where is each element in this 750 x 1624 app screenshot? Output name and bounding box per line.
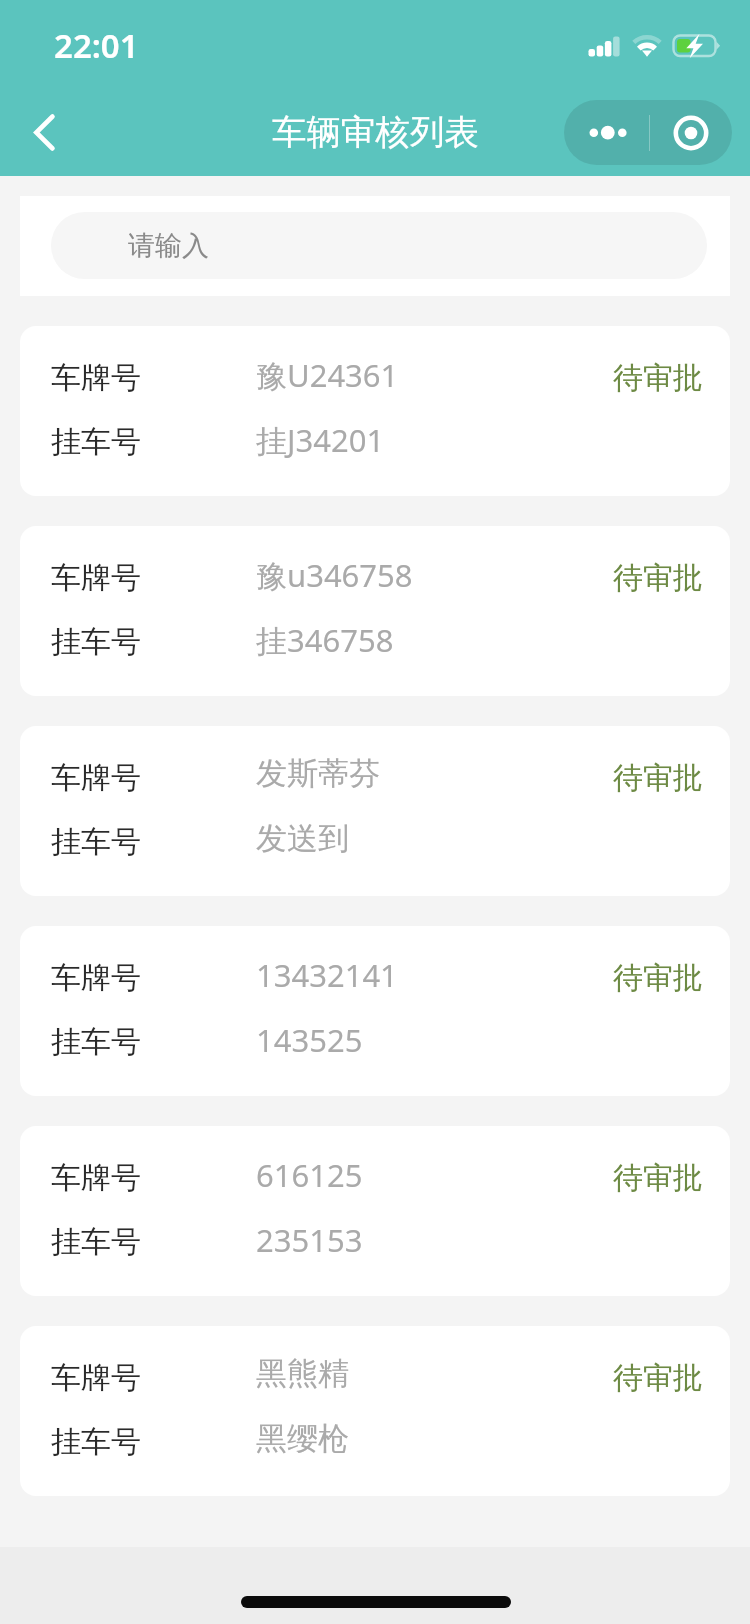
staticText: 待审批 <box>613 959 703 997</box>
button[interactable]: 车牌号 <box>20 726 730 896</box>
staticText: 车牌号 <box>51 1159 141 1197</box>
staticText: 挂346758 <box>256 619 394 661</box>
staticText: 待审批 <box>613 1359 703 1397</box>
staticText: 待审批 <box>613 359 703 397</box>
button[interactable]: 请输入 <box>51 212 707 279</box>
button[interactable]: 车牌号 <box>20 526 730 696</box>
staticText: 挂车号 <box>51 1223 141 1261</box>
staticText: 车牌号 <box>51 559 141 597</box>
staticText: 挂车号 <box>51 423 141 461</box>
staticText: 挂车号 <box>51 823 141 861</box>
staticText: 13432141 <box>256 954 398 996</box>
staticText: 车牌号 <box>51 759 141 797</box>
staticText: 豫u346758 <box>256 554 413 596</box>
staticText: 待审批 <box>613 1159 703 1197</box>
staticText: 挂车号 <box>51 623 141 661</box>
staticText: 挂车号 <box>51 1023 141 1061</box>
staticText: 发送到 <box>256 819 349 858</box>
staticText: 挂车号 <box>51 1423 141 1461</box>
button[interactable]: 车牌号 <box>20 1126 730 1296</box>
staticText: 发斯蒂芬 <box>256 754 380 793</box>
staticText: 黑缨枪 <box>256 1419 349 1458</box>
staticText: 车牌号 <box>51 959 141 997</box>
staticText: 豫U24361 <box>256 354 399 396</box>
staticText: 待审批 <box>613 559 703 597</box>
button[interactable]: Close mini program <box>650 100 732 165</box>
button[interactable]: 车牌号 <box>20 1326 730 1496</box>
button[interactable]: Back <box>12 98 80 166</box>
staticText: 车牌号 <box>51 359 141 397</box>
staticText: 22:01 <box>54 23 139 68</box>
button[interactable]: 车牌号 <box>20 926 730 1096</box>
button[interactable]: More options <box>564 100 649 165</box>
staticText: 143525 <box>256 1019 363 1061</box>
staticText: 黑熊精 <box>256 1354 349 1393</box>
button[interactable]: 车牌号 <box>20 326 730 496</box>
staticText: 235153 <box>256 1219 363 1261</box>
staticText: 待审批 <box>613 759 703 797</box>
staticText: 挂J34201 <box>256 419 385 461</box>
staticText: 车辆审核列表 <box>272 111 479 154</box>
staticText: 请输入 <box>128 229 209 263</box>
staticText: 616125 <box>256 1154 363 1196</box>
staticText: 车牌号 <box>51 1359 141 1397</box>
